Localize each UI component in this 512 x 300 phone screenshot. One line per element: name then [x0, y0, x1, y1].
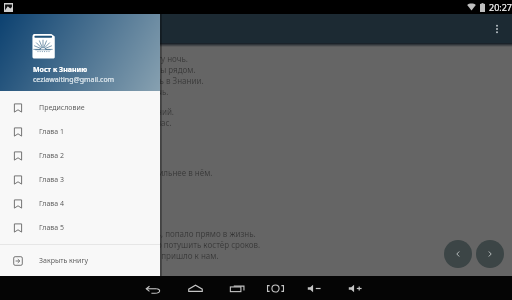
staticText: Глава 1 — [39, 127, 65, 137]
button[interactable]: Volume up — [344, 276, 368, 300]
staticText: Нам уже больше не дано потушить костёр с… — [64, 239, 261, 250]
button[interactable]: Глава 2 — [0, 144, 160, 168]
button[interactable]: Back — [141, 276, 165, 300]
staticText: Мост к Знанию — [33, 65, 88, 75]
staticText: Закрыть книгу — [39, 256, 89, 266]
button[interactable]: Volume down — [303, 276, 327, 300]
staticText: И ты станешь намного сильнее в нём. — [64, 167, 213, 178]
button[interactable]: Recent apps — [225, 276, 250, 300]
staticText: Предисловие — [39, 103, 85, 113]
staticText: Открой своё сердце, и Мы рядом. — [64, 64, 196, 75]
button[interactable]: Screenshot — [261, 276, 290, 300]
staticText: Однако наше время уже пришло к нам. — [64, 250, 219, 261]
staticText: Укажем тебе верный путь в Знании. — [64, 75, 204, 86]
staticText: Смотри и слушай эту ночь. — [64, 86, 169, 97]
staticText: Глава 2 — [39, 151, 65, 161]
staticText: ceziawaiting@gmail.com — [33, 75, 115, 85]
button[interactable]: Глава 5 — [0, 216, 160, 240]
button[interactable]: Закрыть книгу — [0, 249, 160, 273]
staticText: Глава 4 — [39, 199, 65, 209]
staticText: 20:27 — [489, 1, 512, 13]
staticText: Глава 5 — [39, 223, 65, 233]
staticText: И всё, что уже случилось, попало прямо в… — [64, 228, 256, 239]
button[interactable]: Home — [183, 276, 208, 300]
button[interactable]: Глава 4 — [0, 192, 160, 216]
staticText: Всё, что было, теперь у нас. — [64, 117, 172, 128]
button[interactable]: Глава 3 — [0, 168, 160, 192]
button[interactable]: Предисловие — [0, 96, 160, 120]
staticText: Глава 3 — [39, 175, 65, 185]
button[interactable]: Глава 1 — [0, 120, 160, 144]
button[interactable]: Next page — [476, 240, 504, 268]
staticText: Теперь ты не одинок в эту ночь. — [64, 53, 188, 64]
button[interactable]: More options — [487, 19, 507, 39]
staticText: Больше у нас нет сомнений. — [64, 106, 175, 117]
button[interactable]: Previous page — [444, 240, 472, 268]
